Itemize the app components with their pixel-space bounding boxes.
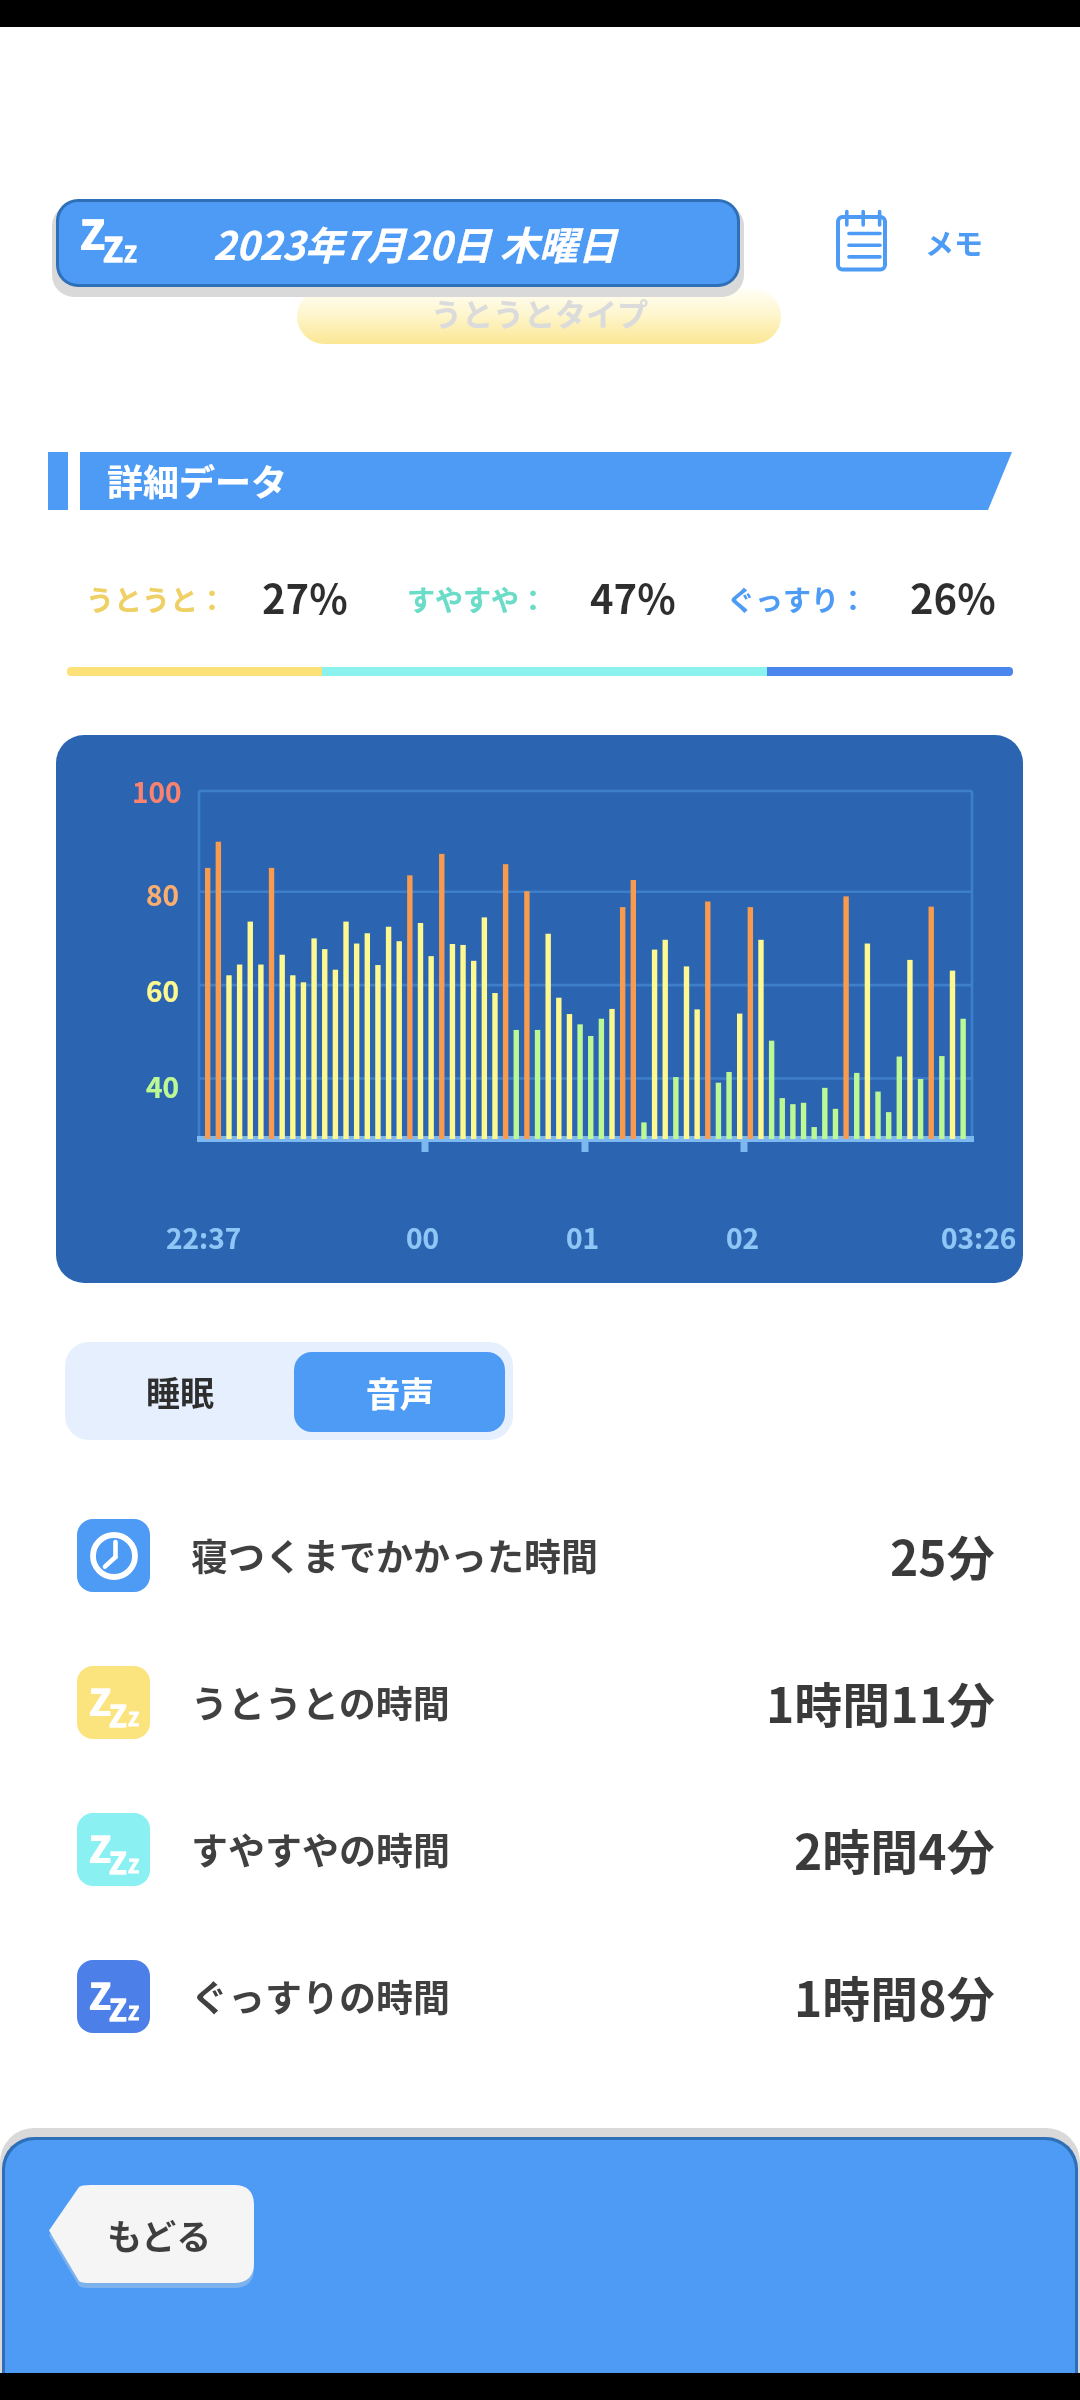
staticText: もどる <box>107 2209 212 2260</box>
staticText: Z <box>109 1987 127 2029</box>
staticText: Z <box>109 1693 127 1735</box>
staticText: 26% <box>910 568 996 626</box>
staticText: うとうとの時間 <box>191 1675 450 1729</box>
staticText: 47% <box>590 568 676 626</box>
staticText: すやすやの時間 <box>191 1822 450 1876</box>
button[interactable]: Z <box>0 1923 1080 2069</box>
staticText: 40 <box>146 1066 180 1107</box>
button[interactable]: Z <box>59 202 737 284</box>
staticText: 睡眠 <box>146 1367 214 1416</box>
staticText: Z <box>124 238 137 268</box>
staticText: 03:26 <box>941 1217 1017 1258</box>
button[interactable]: Z <box>0 1776 1080 1922</box>
staticText: Z <box>128 1999 140 2026</box>
other: メモ <box>836 210 896 272</box>
staticText: 01 <box>566 1217 600 1258</box>
staticText: Z <box>89 1674 112 1716</box>
staticText: 02 <box>726 1217 760 1258</box>
staticText: 80 <box>146 874 180 915</box>
button[interactable]: 寝つくまでかかった時間 <box>0 1482 1080 1628</box>
button[interactable]: メモ <box>836 206 1016 276</box>
staticText: 60 <box>146 970 180 1011</box>
staticText: Z <box>128 1705 140 1732</box>
staticText: Z <box>89 1968 112 2010</box>
staticText: 寝つくまでかかった時間 <box>191 1528 598 1582</box>
staticText: 2時間4分 <box>794 1814 995 1884</box>
staticText: すやすや： <box>407 579 548 620</box>
staticText: メモ <box>925 221 984 263</box>
staticText: Z <box>103 224 124 272</box>
button[interactable]: もどる <box>49 2185 254 2288</box>
staticText: ぐっすりの時間 <box>191 1969 450 2023</box>
staticText: 100 <box>132 771 182 812</box>
staticText: 1時間8分 <box>794 1961 995 2031</box>
staticText: ぐっすり： <box>727 579 868 620</box>
staticText: Z <box>89 1821 112 1863</box>
button[interactable]: 音声 <box>294 1352 505 1432</box>
staticText: Z <box>80 202 106 250</box>
staticText: Z <box>109 1840 127 1882</box>
staticText: 22:37 <box>166 1217 242 1258</box>
button[interactable]: 睡眠 <box>65 1342 294 1440</box>
staticText: 00 <box>406 1217 440 1258</box>
button[interactable]: Z <box>0 1629 1080 1775</box>
staticText: 25分 <box>890 1520 995 1590</box>
staticText: うとうと： <box>86 579 227 620</box>
staticText: 詳細データ <box>107 454 288 506</box>
staticText: 1時間11分 <box>766 1667 995 1737</box>
staticText: 2023年7月20日 木曜日 <box>213 215 617 271</box>
staticText: Z <box>128 1852 140 1879</box>
staticText: うとうとタイプ <box>431 290 648 335</box>
staticText: 27% <box>262 568 348 626</box>
staticText: 音声 <box>366 1368 434 1417</box>
